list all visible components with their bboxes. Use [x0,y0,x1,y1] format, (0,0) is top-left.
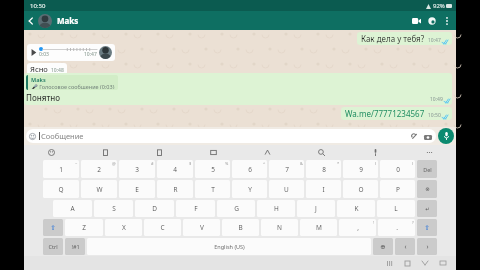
button[interactable]: S [94,200,133,217]
button[interactable]: 9 [343,160,378,178]
staticText: !#1 [71,243,80,250]
button[interactable]: Search [294,145,348,159]
button[interactable]: W [81,180,117,198]
button[interactable]: ⇧ [417,219,437,236]
button[interactable]: D [135,200,174,217]
button[interactable]: Keyboard [434,256,452,270]
button[interactable]: 0:03 [27,44,115,61]
button[interactable]: J [297,200,335,217]
staticText: J [315,204,317,213]
button[interactable]: 3 [119,160,155,178]
button[interactable]: ⊕ [373,238,393,255]
button[interactable]: Ctrl [43,238,63,255]
staticText: ⇧ [424,224,430,232]
staticText: ) [412,161,414,166]
button[interactable]: Maks [24,73,452,105]
button[interactable]: Q [43,180,79,198]
staticText: 10:47 [428,37,441,44]
button[interactable]: P [380,180,415,198]
button[interactable]: L [377,200,415,217]
button[interactable]: ⇧ [43,219,63,236]
button[interactable]: G [217,200,255,217]
staticText: Y [248,185,252,194]
button[interactable]: H [257,200,295,217]
staticText: 1 [59,165,63,174]
button[interactable]: C [144,219,181,236]
button[interactable]: 8 [306,160,341,178]
button[interactable]: Y [232,180,267,198]
staticText: 10:50 [30,2,46,10]
button[interactable]: T [195,180,230,198]
button[interactable]: Attach [409,131,420,142]
button[interactable]: R [157,180,193,198]
button[interactable]: Как дела у тебя? [357,32,452,45]
button[interactable]: Ясно [27,63,67,75]
staticText: H [274,204,279,213]
button[interactable]: 1 [43,160,79,178]
staticText: 0:03 [39,51,49,58]
button[interactable]: Z [65,219,103,236]
button[interactable]: Recents [380,256,398,270]
staticText: ‹ [404,242,407,251]
button[interactable]: V [183,219,220,236]
button[interactable]: Sticker [132,145,186,159]
button[interactable]: 6 [232,160,267,178]
button[interactable]: ↵ [417,200,437,217]
staticText: N [277,223,282,232]
button[interactable]: Camera [422,131,433,142]
staticText: ^ [263,161,266,166]
button[interactable]: I [306,180,341,198]
button[interactable]: . [378,219,415,236]
button[interactable]: GIF [186,145,240,159]
button[interactable]: K [337,200,375,217]
staticText: › [426,242,429,251]
button[interactable]: English (US) [87,238,371,255]
button[interactable]: !#1 [65,238,85,255]
staticText: O [358,185,364,194]
button[interactable]: Translate [240,145,294,159]
button[interactable]: ‹ [395,238,415,255]
button[interactable]: Voice call [424,13,440,29]
button[interactable]: Del [417,160,437,178]
button[interactable]: A [53,200,92,217]
staticText: @ [112,161,116,166]
staticText: ⊕ [380,243,386,251]
button[interactable]: Emoji [24,145,78,159]
button[interactable]: More options [440,14,454,28]
staticText: 10:49 [430,96,443,103]
button[interactable]: Clipboard [78,145,132,159]
staticText: R [173,185,178,194]
button[interactable]: 2 [81,160,117,178]
button[interactable]: 4 [157,160,193,178]
button[interactable]: E [119,180,155,198]
button[interactable]: B [222,219,259,236]
staticText: & [300,161,303,166]
staticText: * [337,161,340,166]
button[interactable]: Wa.me/77771234567 [341,107,452,120]
button[interactable]: X [105,219,142,236]
button[interactable]: Voice input [348,145,402,159]
button[interactable]: N [261,219,298,236]
button[interactable]: Сообщение [26,129,436,143]
button[interactable]: ⊗ [417,180,437,198]
button[interactable]: F [176,200,215,217]
button[interactable]: 0 [380,160,415,178]
staticText: B [238,223,243,232]
button[interactable]: , [339,219,376,236]
button[interactable]: › [417,238,437,255]
staticText: 7 [285,165,289,174]
button[interactable]: More [402,145,456,159]
button[interactable]: M [300,219,337,236]
button[interactable]: Hide keyboard [416,256,434,270]
staticText: S [112,204,116,213]
button[interactable]: Video call [408,13,424,29]
button[interactable]: O [343,180,378,198]
button[interactable]: Record voice message [438,128,454,144]
button[interactable]: U [269,180,304,198]
button[interactable]: Home [398,256,416,270]
button[interactable]: Maks [57,15,408,26]
button[interactable]: 7 [269,160,304,178]
button[interactable]: 5 [195,160,230,178]
staticText: ~ [75,161,78,166]
button[interactable]: Back [24,14,38,28]
